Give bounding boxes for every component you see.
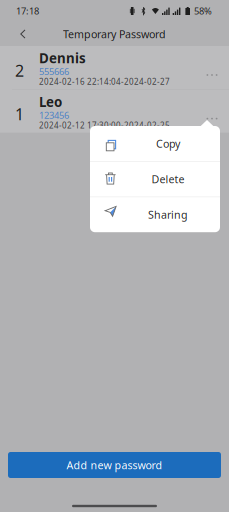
staticText: Leo — [39, 93, 62, 111]
button[interactable]: Delete — [90, 162, 220, 197]
staticText: 2 — [15, 60, 24, 81]
button[interactable]: Back — [8, 22, 38, 46]
staticText: Sharing — [148, 208, 188, 222]
staticText: Add new password — [66, 458, 162, 472]
button[interactable]: 1 — [0, 90, 229, 133]
staticText: 2024-02-12 17:30:00-2024-02-25 — [39, 120, 170, 131]
staticText: 1 — [15, 103, 24, 125]
button[interactable]: 2 — [0, 46, 229, 89]
staticText: Dennis — [39, 49, 86, 67]
staticText: 2024-02-16 22:14:04-2024-02-27 — [39, 76, 170, 87]
button[interactable]: Add new password — [8, 452, 221, 478]
staticText: 58% — [194, 5, 212, 17]
staticText: Delete — [151, 172, 184, 186]
button[interactable]: Sharing — [90, 197, 220, 232]
staticText: Temporary Password — [63, 27, 166, 41]
button[interactable]: Copy — [90, 126, 220, 161]
staticText: 123456 — [39, 109, 69, 121]
staticText: 555666 — [39, 65, 69, 78]
staticText: Copy — [156, 136, 180, 151]
staticText: 17:18 — [16, 5, 39, 17]
